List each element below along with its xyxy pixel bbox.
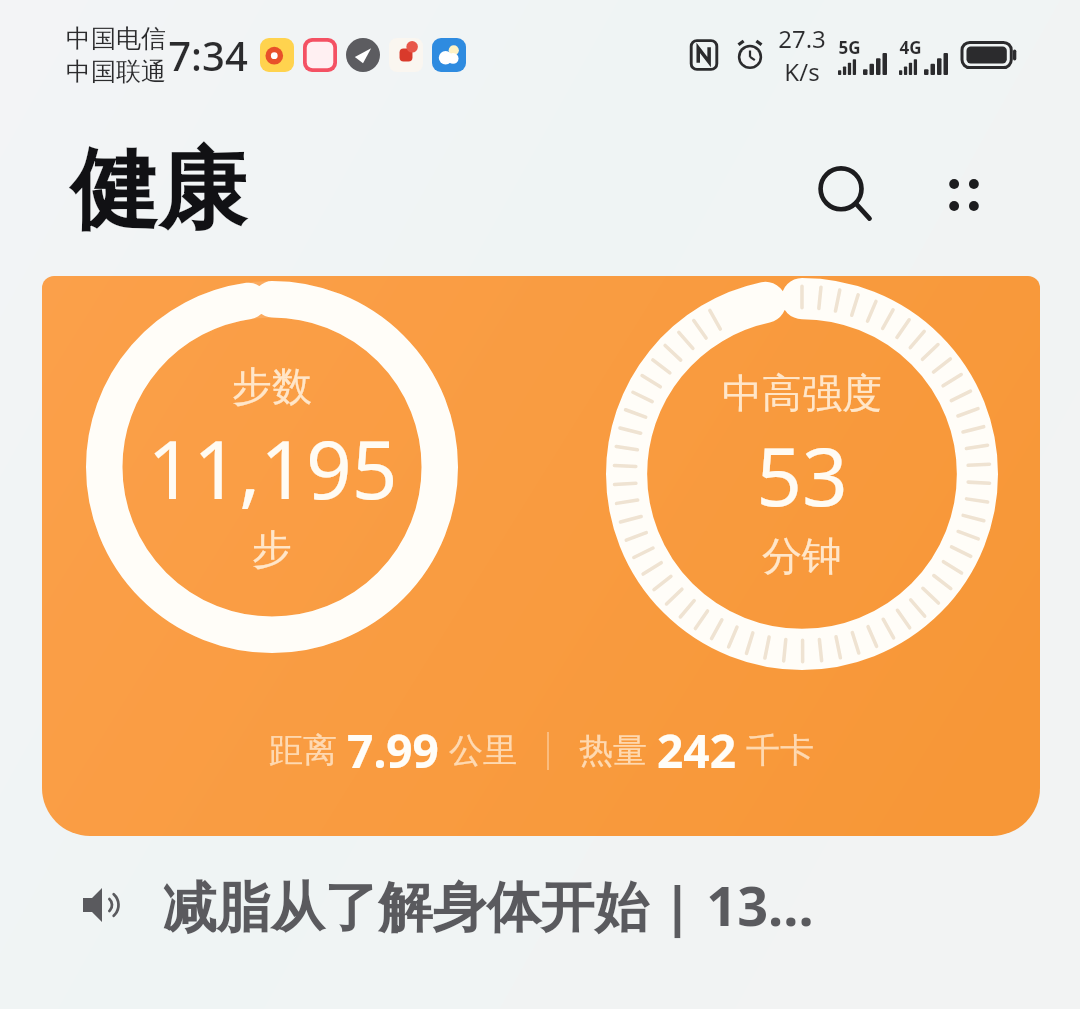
button[interactable]: 步数 — [42, 276, 1040, 836]
staticText: 7:34 — [168, 28, 248, 82]
staticText: 步数 — [232, 361, 312, 411]
staticText: 千卡 — [746, 729, 814, 772]
staticText: 4G — [899, 36, 922, 59]
staticText: 242 — [657, 719, 736, 782]
staticText: 分钟 — [762, 531, 842, 581]
staticText: 5G — [838, 36, 861, 59]
staticText: 53 — [756, 420, 848, 529]
staticText: 中国电信 — [66, 23, 166, 54]
staticText: 减脂从了解身体开始 | 13... — [162, 868, 814, 942]
staticText: K/s — [784, 55, 820, 88]
staticText: 距离 — [269, 729, 337, 772]
staticText: 步 — [252, 524, 292, 574]
button[interactable]: 减脂从了解身体开始 | 13... — [0, 850, 1080, 960]
staticText: 中高强度 — [722, 368, 882, 418]
button[interactable]: More options — [918, 149, 1010, 241]
staticText: 热量 — [579, 729, 647, 772]
staticText: 公里 — [449, 729, 517, 772]
button[interactable]: Search — [800, 149, 892, 241]
staticText: 11,195 — [147, 413, 398, 522]
staticText: 27.3 — [778, 22, 826, 55]
staticText: 健康 — [70, 135, 246, 246]
staticText: 7.99 — [347, 719, 439, 782]
staticText: 中国联通 — [66, 56, 166, 87]
button[interactable]: 健康 — [70, 135, 246, 246]
